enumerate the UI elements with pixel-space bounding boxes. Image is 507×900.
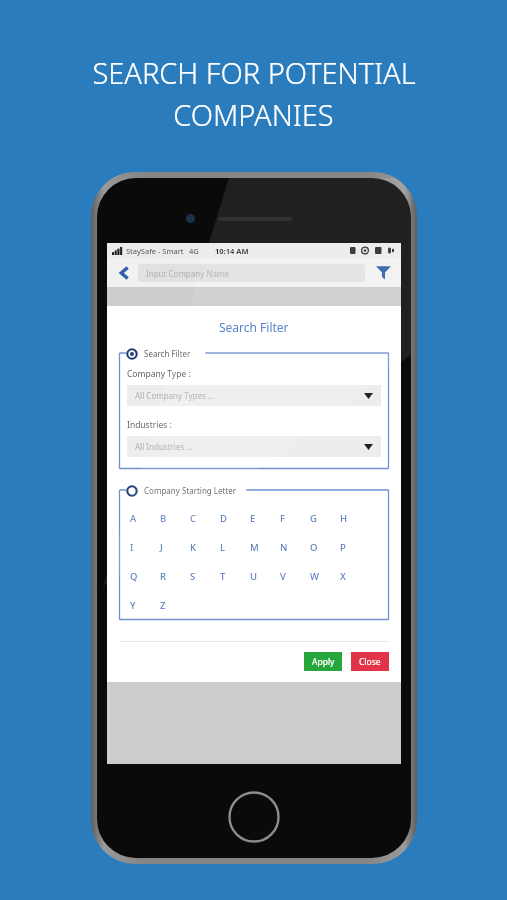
staticText: E [250,512,256,525]
staticText: J [160,541,163,554]
staticText: Apply [312,656,335,668]
staticText: B [160,512,167,525]
button[interactable]: W [310,565,332,587]
button[interactable]: Company Starting Letter [124,483,139,498]
button[interactable]: Z [160,594,182,616]
button[interactable]: O [310,536,332,558]
button[interactable]: X [340,565,362,587]
button[interactable]: E [250,507,272,529]
button[interactable]: B [160,507,182,529]
button[interactable]: U [250,565,272,587]
staticText: S [190,570,196,583]
staticText: Q [130,570,138,583]
staticText: All Company Types ... [135,390,215,401]
staticText: Close [359,656,381,668]
staticText: W [310,570,319,583]
staticText: Search Filter [144,348,191,359]
staticText: Company Starting Letter [144,485,237,496]
staticText: A [130,512,137,525]
staticText: Z [160,599,166,612]
button[interactable]: Filter [372,259,394,286]
staticText: V [280,570,286,583]
button[interactable]: I [130,536,152,558]
button[interactable]: All Industries ... [127,436,381,457]
button[interactable]: All Company Types ... [127,385,381,406]
staticText: F [280,512,286,525]
button[interactable]: Input Company Name [138,264,365,282]
button[interactable]: P [340,536,362,558]
staticText: Y [130,599,136,612]
staticText: 4G [189,246,199,256]
button[interactable]: H [340,507,362,529]
button[interactable]: T [220,565,242,587]
button[interactable]: C [190,507,212,529]
button[interactable]: S [190,565,212,587]
button[interactable]: A [130,507,152,529]
button[interactable]: Close [351,652,389,671]
button[interactable]: F [280,507,302,529]
staticText: Company Type : [127,368,191,380]
button[interactable]: K [190,536,212,558]
staticText: X [340,570,346,583]
staticText: 10:14 AM [215,246,249,256]
button[interactable]: N [280,536,302,558]
staticText: H [340,512,348,525]
button[interactable]: G [310,507,332,529]
staticText: U [250,570,258,583]
button[interactable]: D [220,507,242,529]
button[interactable]: J [160,536,182,558]
staticText: I [130,541,134,554]
staticText: COMPANIES [173,95,334,134]
staticText: StaySafe - Smart [126,246,184,256]
button[interactable]: Y [130,594,152,616]
button[interactable]: Q [130,565,152,587]
staticText: N [280,541,288,554]
staticText: C [190,512,197,525]
staticText: Search Filter [219,319,289,335]
staticText: P [340,541,346,554]
staticText: M [250,541,259,554]
staticText: G [310,512,317,525]
button[interactable]: Back [114,259,134,286]
staticText: Input Company Name [146,268,229,279]
button[interactable]: R [160,565,182,587]
button[interactable]: L [220,536,242,558]
button[interactable]: Apply [304,652,342,671]
button[interactable]: V [280,565,302,587]
staticText: R [160,570,167,583]
staticText: D [220,512,227,525]
staticText: O [310,541,318,554]
staticText: All Industries ... [135,441,193,452]
staticText: L [220,541,226,554]
button[interactable]: M [250,536,272,558]
button[interactable]: Search Filter [124,346,139,361]
staticText: K [190,541,197,554]
staticText: T [220,570,226,583]
staticText: SEARCH FOR POTENTIAL [92,53,416,92]
staticText: Industries : [127,419,172,431]
